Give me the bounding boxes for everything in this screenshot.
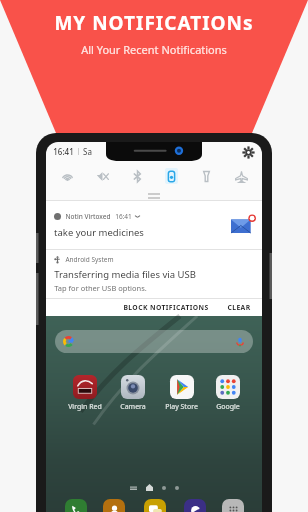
staticText: Camera	[120, 402, 146, 412]
button[interactable]: Camera	[118, 375, 148, 412]
button[interactable]: Settings	[240, 144, 256, 160]
staticText: Google	[216, 402, 240, 412]
button[interactable]: CLEAR	[223, 301, 255, 314]
staticText: Android System	[65, 255, 114, 264]
button[interactable]: Airplane mode	[228, 164, 254, 188]
button[interactable]: Android System	[46, 250, 262, 298]
button[interactable]: Mute	[89, 164, 115, 188]
staticText: Sa	[83, 146, 92, 157]
staticText: 16:41	[53, 146, 74, 157]
staticText: Virgin Red	[68, 402, 102, 412]
staticText: Tap for other USB options.	[54, 283, 147, 293]
staticText: Notin Virtoxed	[65, 212, 111, 221]
button[interactable]: Flashlight	[193, 164, 219, 188]
staticText: Transferring media files via USB	[54, 268, 196, 281]
staticText: BLOCK NOTIFICATIONS	[123, 303, 209, 312]
button[interactable]: Play Store	[163, 375, 200, 412]
staticText: Play Store	[165, 402, 198, 412]
staticText: 16:41	[115, 212, 132, 221]
staticText: CLEAR	[227, 303, 251, 312]
button[interactable]: Notin Virtoxed	[46, 201, 262, 249]
button[interactable]: Contacts	[100, 499, 127, 512]
button[interactable]: Messages	[140, 499, 170, 512]
staticText: MY NOTIFICATIONs	[54, 10, 254, 36]
button[interactable]: Phone	[64, 499, 88, 512]
button[interactable]: Auto rotate	[158, 164, 184, 188]
button[interactable]: BLOCK NOTIFICATIONS	[119, 301, 213, 314]
button[interactable]: Virgin Red	[66, 375, 104, 412]
button[interactable]	[55, 330, 253, 353]
button[interactable]: Bluetooth	[124, 164, 150, 188]
button[interactable]: Internet	[182, 499, 208, 512]
staticText: take your medicines	[54, 226, 144, 239]
staticText: All Your Recent Notifications	[81, 42, 227, 57]
button[interactable]: Apps	[221, 499, 245, 512]
button[interactable]: Google	[214, 375, 242, 412]
button[interactable]: Wi-Fi	[54, 164, 80, 188]
